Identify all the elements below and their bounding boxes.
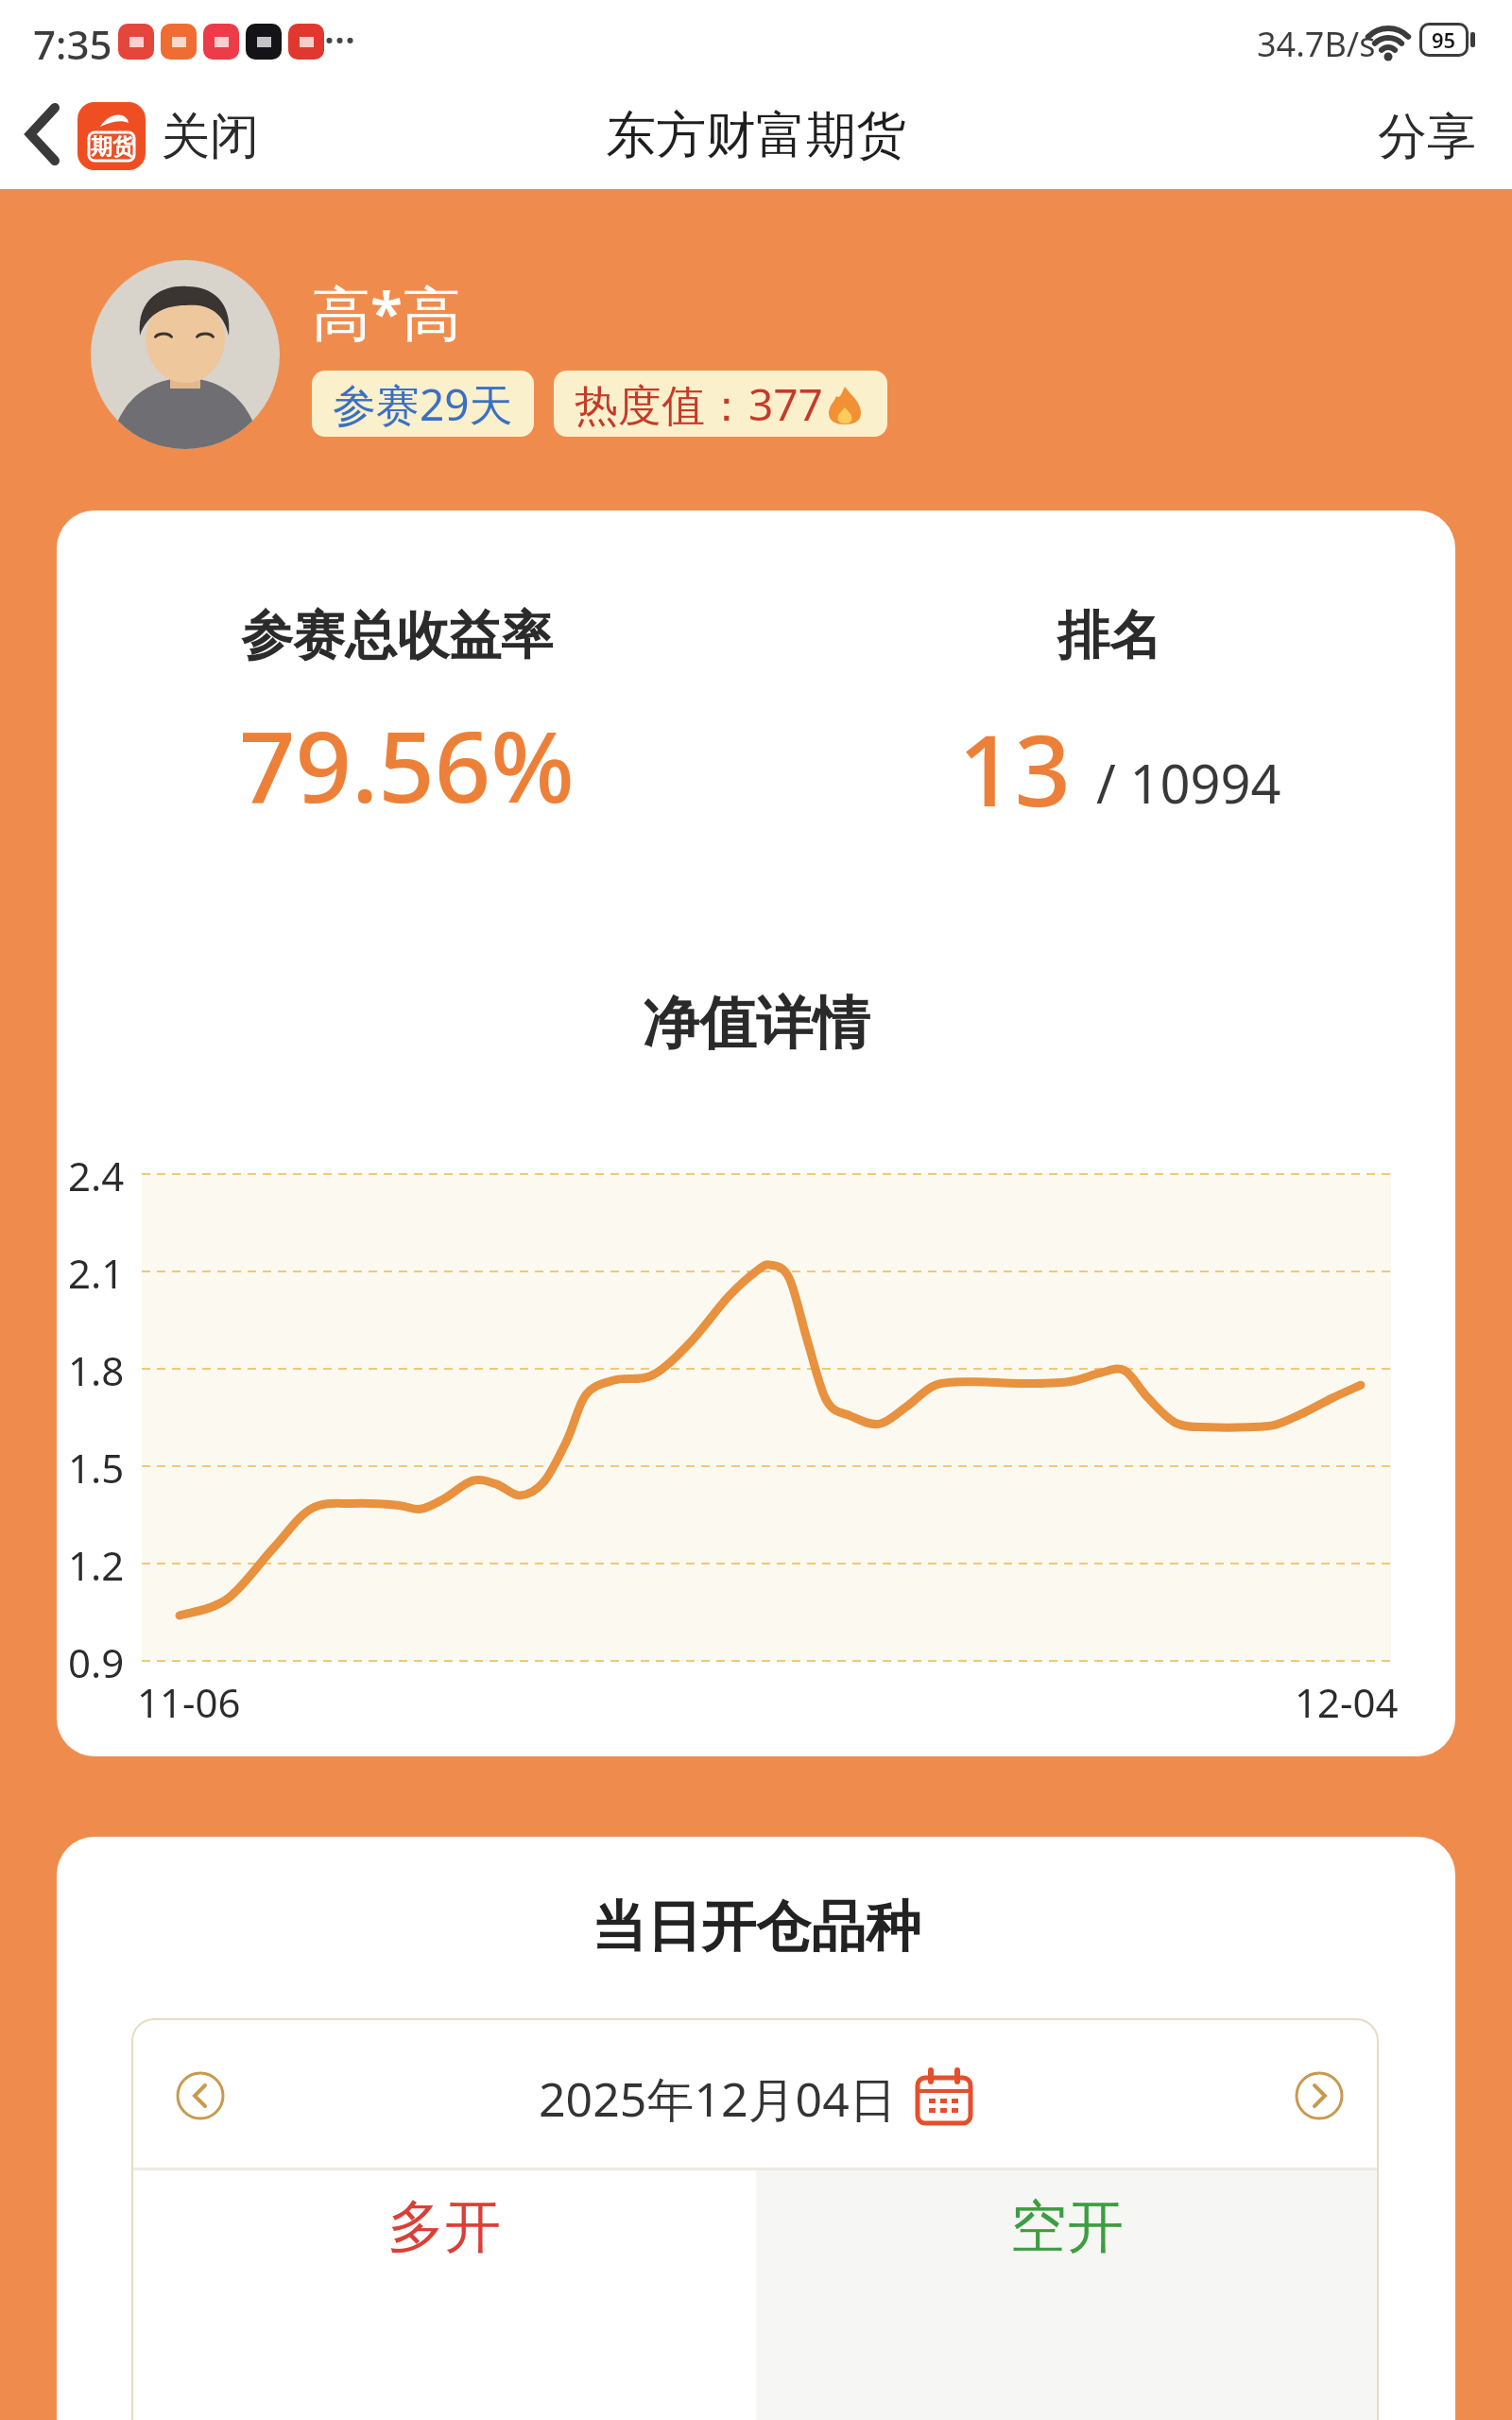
staticText: 12-04	[1295, 1675, 1399, 1729]
staticText: 当日开仓品种	[592, 1893, 920, 1962]
staticText: 空开	[1010, 2191, 1124, 2263]
staticText: 参赛总收益率	[241, 603, 553, 668]
staticText: 高*高	[312, 272, 461, 353]
button[interactable]: 多开	[133, 2191, 755, 2263]
staticText: 2.1	[68, 1246, 125, 1300]
staticText: 11-06	[137, 1675, 241, 1729]
staticText: 东方财富期货	[606, 104, 906, 167]
staticText: 2025年12月04日	[539, 2066, 897, 2131]
staticText: 1.2	[68, 1538, 125, 1592]
button[interactable]: 期货	[77, 102, 146, 170]
button[interactable]: 2025年12月04日	[0, 2066, 1512, 2131]
staticText: 2.4	[68, 1149, 125, 1202]
button[interactable]: 空开	[756, 2191, 1377, 2263]
staticText: 热度值：377	[575, 374, 823, 434]
staticText: 分享	[1378, 106, 1476, 168]
staticText: / 10994	[1096, 747, 1281, 819]
button[interactable]	[1295, 2071, 1344, 2120]
button[interactable]	[26, 106, 60, 163]
staticText: 排名	[1057, 603, 1161, 668]
button[interactable]: 关闭	[161, 106, 259, 168]
staticText: 13	[958, 701, 1071, 836]
staticText: 95	[1432, 26, 1456, 54]
staticText: 期货	[91, 133, 134, 161]
button[interactable]	[176, 2071, 225, 2120]
staticText: 参赛29天	[333, 374, 513, 434]
button[interactable]: 分享	[1378, 106, 1476, 168]
staticText: 净值详情	[643, 988, 869, 1060]
staticText: 34.7B/s	[1257, 21, 1376, 67]
staticText: 1.5	[68, 1441, 125, 1495]
staticText: ···	[324, 13, 356, 64]
staticText: 0.9	[68, 1635, 125, 1689]
staticText: 79.56%	[239, 698, 575, 832]
staticText: 1.8	[68, 1343, 125, 1397]
button[interactable]	[91, 260, 280, 449]
staticText: 7:35	[33, 17, 112, 71]
staticText: 多开	[387, 2191, 501, 2263]
staticText: 关闭	[161, 106, 259, 168]
